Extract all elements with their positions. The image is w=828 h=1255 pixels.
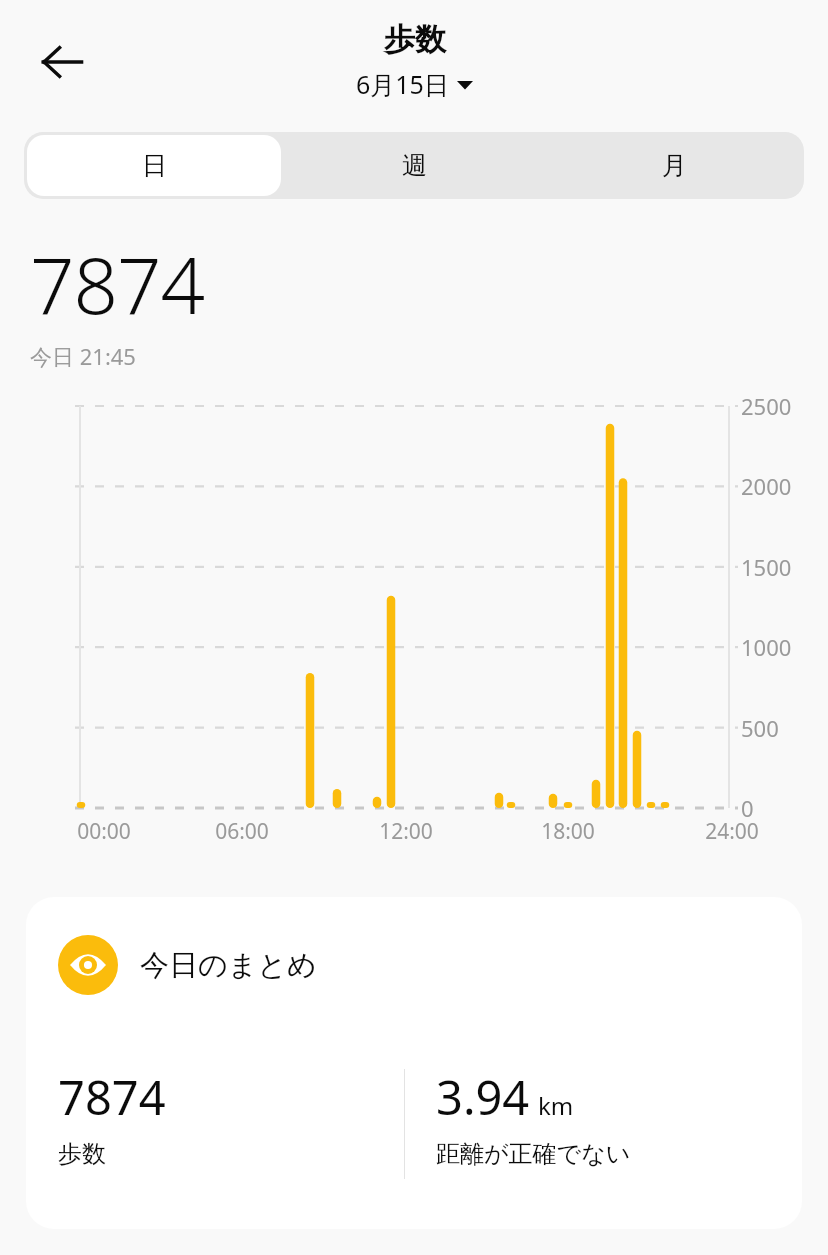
staticText: 今日 21:45 bbox=[30, 341, 136, 371]
staticText: 0 bbox=[741, 793, 754, 823]
staticText: 歩数 bbox=[58, 1139, 106, 1169]
staticText: 1000 bbox=[741, 632, 792, 662]
staticText: 3.94 bbox=[436, 1065, 530, 1129]
button[interactable]: 6月15日 bbox=[352, 65, 477, 103]
button[interactable]: Back bbox=[32, 32, 92, 92]
button[interactable]: 週 bbox=[287, 135, 541, 196]
staticText: 7874 bbox=[30, 231, 205, 337]
staticText: 6月15日 bbox=[356, 67, 449, 101]
staticText: 00:00 bbox=[59, 817, 149, 846]
staticText: km bbox=[538, 1089, 574, 1122]
staticText: 距離が正確でない bbox=[436, 1139, 631, 1169]
button[interactable]: 今日のまとめ bbox=[26, 897, 802, 1229]
staticText: 週 bbox=[402, 150, 427, 181]
staticText: 月 bbox=[662, 150, 687, 181]
staticText: 2000 bbox=[741, 471, 792, 501]
staticText: 日 bbox=[142, 150, 167, 181]
staticText: 1500 bbox=[741, 552, 792, 582]
staticText: 歩数 bbox=[384, 20, 446, 59]
staticText: 500 bbox=[741, 713, 779, 743]
staticText: 2500 bbox=[741, 391, 792, 421]
button[interactable]: 日 bbox=[27, 135, 281, 196]
staticText: 18:00 bbox=[523, 817, 613, 846]
staticText: 24:00 bbox=[687, 817, 777, 846]
staticText: 7874 bbox=[58, 1065, 166, 1129]
staticText: 06:00 bbox=[197, 817, 287, 846]
staticText: 12:00 bbox=[361, 817, 451, 846]
button[interactable]: 月 bbox=[547, 135, 801, 196]
staticText: 今日のまとめ bbox=[140, 947, 317, 984]
